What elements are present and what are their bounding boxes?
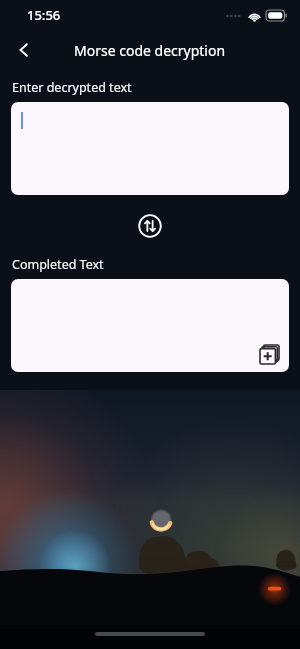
button[interactable]: Swap direction [133, 209, 167, 243]
staticText: 15:56 [27, 6, 61, 24]
button[interactable] [11, 102, 289, 195]
button[interactable]: Back [5, 31, 43, 69]
staticText: Morse code decryption [74, 41, 226, 60]
staticText: Enter decrypted text [12, 79, 132, 96]
button[interactable]: Copy text [256, 341, 282, 367]
staticText: Completed Text [12, 256, 104, 273]
